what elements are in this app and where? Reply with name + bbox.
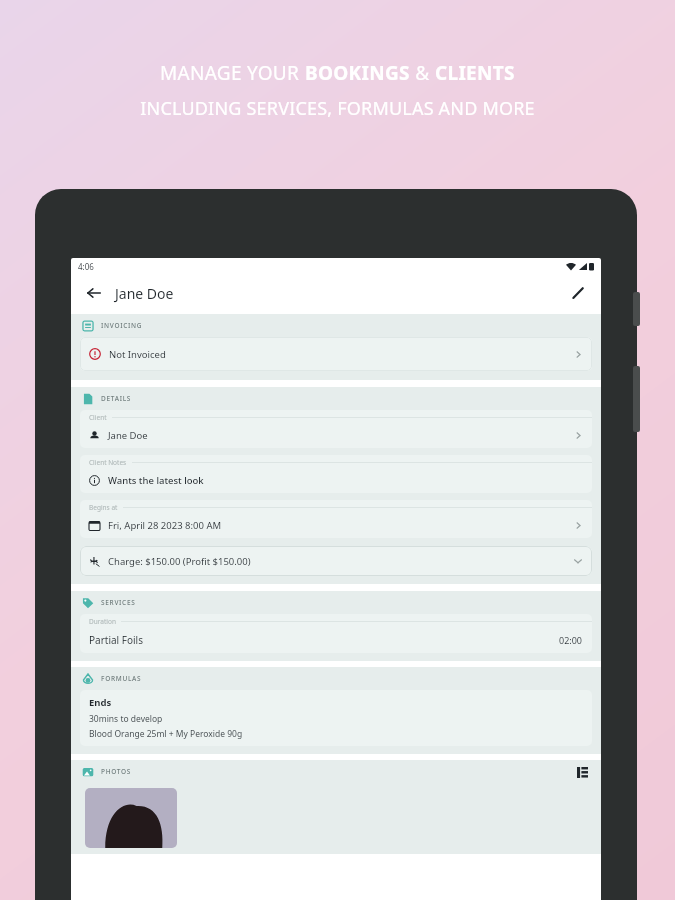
staticText: Client [89, 413, 107, 422]
button[interactable]: Ends [80, 690, 592, 746]
staticText: Ends [89, 696, 112, 709]
staticText: 02:00 [559, 634, 583, 646]
staticText: Client Notes [89, 458, 127, 467]
staticText: Jane Doe [115, 284, 174, 303]
button[interactable]: Not Invoiced [80, 337, 592, 371]
staticText: BOOKINGS [305, 60, 410, 86]
staticText: Duration [89, 617, 116, 626]
button[interactable]: Charge: $150.00 (Profit $150.00) [80, 546, 592, 576]
button[interactable]: Grid view [574, 764, 590, 780]
staticText: INVOICING [101, 321, 143, 330]
staticText: MANAGE YOUR [160, 60, 305, 86]
staticText: Partial Foils [89, 633, 143, 647]
staticText: Jane Doe [108, 429, 148, 442]
button[interactable]: Jane Doe [80, 422, 592, 448]
staticText: 30mins to develop [89, 713, 163, 725]
button[interactable] [85, 788, 177, 848]
button[interactable]: Back [82, 281, 106, 305]
staticText: Begins at [89, 503, 118, 512]
staticText: Blood Orange 25ml + My Peroxide 90g [89, 728, 243, 740]
staticText: Wants the latest look [108, 474, 204, 487]
staticText: CLIENTS [435, 60, 515, 86]
staticText: DETAILS [101, 394, 132, 403]
button[interactable]: Fri, April 28 2023 8:00 AM [80, 512, 592, 538]
staticText: FORMULAS [101, 674, 142, 683]
staticText: PHOTOS [101, 767, 132, 776]
staticText: 4:06 [78, 261, 94, 272]
button[interactable]: Partial Foils [80, 626, 592, 653]
staticText: Fri, April 28 2023 8:00 AM [108, 519, 222, 532]
staticText: INCLUDING SERVICES, FORMULAS AND MORE [140, 96, 535, 121]
button[interactable]: Edit [566, 281, 590, 305]
button[interactable]: Wants the latest look [80, 467, 592, 493]
staticText: SERVICES [101, 598, 136, 607]
staticText: & [410, 60, 435, 86]
staticText: Charge: $150.00 (Profit $150.00) [108, 555, 251, 568]
staticText: Not Invoiced [109, 348, 166, 361]
